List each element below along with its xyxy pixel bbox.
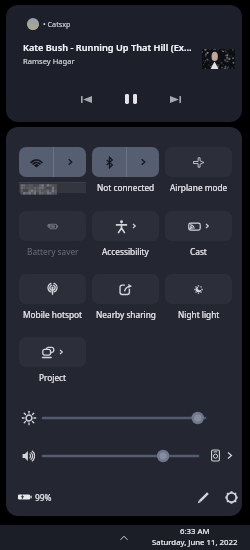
staticText: Battery saver xyxy=(27,246,79,257)
button[interactable]: Brightness xyxy=(43,409,217,427)
button[interactable] xyxy=(19,337,86,367)
button[interactable]: Volume xyxy=(43,447,210,465)
staticText: Mobile hotspot xyxy=(23,309,82,320)
button[interactable] xyxy=(19,147,86,177)
button[interactable]: Show hidden icons xyxy=(116,529,132,545)
button[interactable] xyxy=(19,211,86,241)
button[interactable] xyxy=(92,147,159,177)
staticText: Project xyxy=(39,372,67,383)
staticText: Cast xyxy=(190,246,207,257)
button[interactable]: Pause xyxy=(117,85,145,113)
staticText: Airplane mode xyxy=(170,182,228,193)
staticText: Nearby sharing xyxy=(96,309,156,320)
staticText: Ramsey Hagar xyxy=(23,56,75,66)
button[interactable] xyxy=(19,274,86,304)
button[interactable]: Settings xyxy=(220,486,242,508)
button[interactable] xyxy=(92,211,159,241)
button[interactable] xyxy=(165,211,232,241)
staticText: Night light xyxy=(178,309,220,320)
button[interactable]: Next track xyxy=(161,85,189,113)
staticText: Saturday, June 11, 2022 xyxy=(152,537,238,548)
staticText: • Catsxp xyxy=(43,19,71,29)
staticText: Accessibility xyxy=(102,246,149,257)
staticText: Not connected xyxy=(97,182,155,193)
staticText: 6:33 AM xyxy=(180,526,210,537)
button[interactable]: Audio output device xyxy=(209,449,222,462)
button[interactable] xyxy=(92,274,159,304)
button[interactable] xyxy=(165,274,232,304)
staticText: 99% xyxy=(35,492,52,503)
button[interactable]: Previous track xyxy=(72,85,100,113)
button[interactable]: Edit xyxy=(192,486,214,508)
button[interactable] xyxy=(165,147,232,177)
staticText: Kate Bush - Running Up That Hill (Ex… xyxy=(23,41,192,54)
